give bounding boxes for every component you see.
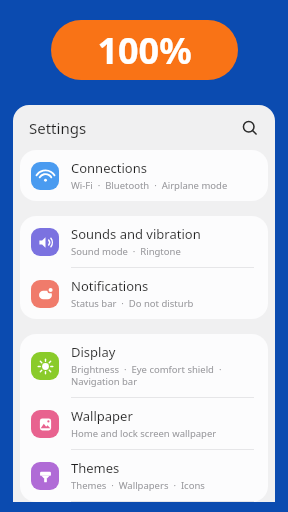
staticText: Wi-Fi · Bluetooth · Airplane mode	[71, 179, 228, 192]
button[interactable]: Connections	[20, 150, 268, 201]
staticText: 100%	[97, 26, 192, 75]
staticText: Status bar · Do not disturb	[71, 297, 194, 310]
staticText: Home and lock screen wallpaper	[71, 427, 217, 440]
staticText: Brightness · Eye comfort shield · Naviga…	[71, 363, 254, 388]
button[interactable]: Search	[237, 115, 263, 141]
button[interactable]: Sounds and vibration	[20, 216, 268, 267]
staticText: Settings	[29, 118, 87, 138]
staticText: Sounds and vibration	[71, 225, 201, 243]
staticText: Display	[71, 343, 116, 361]
staticText: Notifications	[71, 277, 149, 295]
staticText: Themes	[71, 459, 120, 477]
button[interactable]: Display	[20, 334, 268, 397]
button[interactable]: 100%	[51, 20, 238, 80]
staticText: Themes · Wallpapers · Icons	[71, 479, 205, 492]
button[interactable]: Notifications	[20, 268, 268, 319]
staticText: Wallpaper	[71, 407, 133, 425]
staticText: Sound mode · Ringtone	[71, 245, 181, 258]
staticText: Connections	[71, 159, 147, 177]
button[interactable]: Wallpaper	[20, 398, 268, 449]
button[interactable]: Themes	[20, 450, 268, 501]
